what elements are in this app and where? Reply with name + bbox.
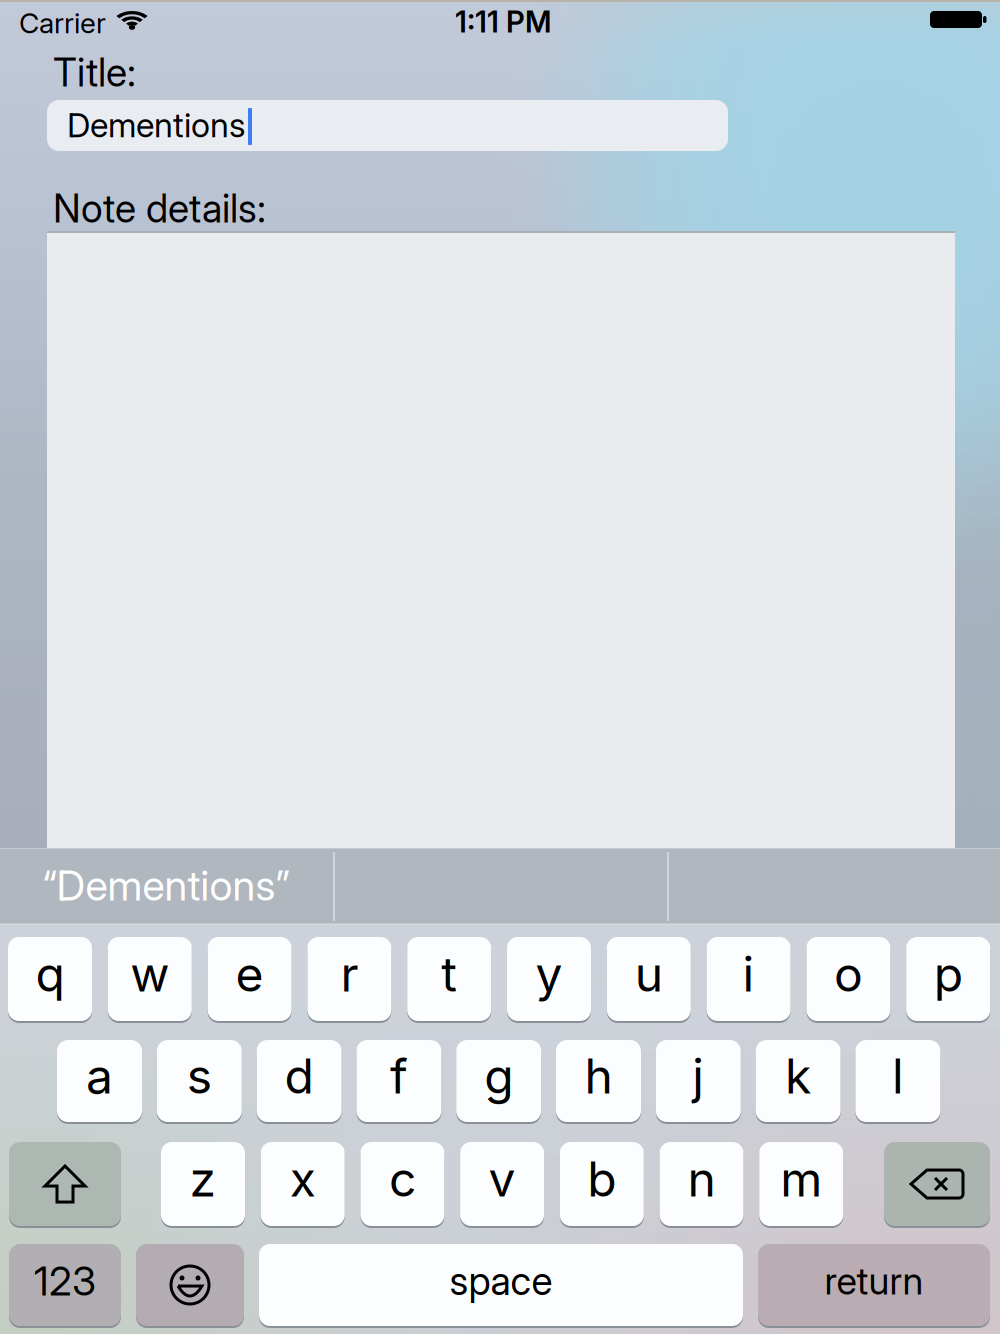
staticText: Carrier <box>19 6 106 40</box>
staticText: w <box>130 945 169 1003</box>
button[interactable]: o <box>806 936 890 1022</box>
staticText: s <box>187 1047 212 1105</box>
button[interactable]: p <box>906 936 990 1022</box>
staticText: a <box>86 1047 113 1105</box>
staticText: space <box>449 1258 552 1304</box>
button[interactable]: space <box>259 1243 743 1327</box>
button[interactable]: q <box>8 936 92 1022</box>
button[interactable]: r <box>307 936 391 1022</box>
staticText: g <box>484 1047 513 1105</box>
staticText: f <box>390 1047 408 1105</box>
staticText: h <box>584 1047 612 1105</box>
button[interactable]: 123 <box>9 1243 121 1327</box>
staticText: d <box>285 1047 314 1105</box>
staticText: k <box>785 1047 811 1105</box>
button[interactable]: Note details <box>47 231 955 848</box>
staticText: o <box>834 945 863 1003</box>
staticText: c <box>389 1150 416 1208</box>
button[interactable]: “Dementions” <box>0 848 332 925</box>
staticText: return <box>824 1258 923 1304</box>
staticText: e <box>236 945 264 1003</box>
button[interactable]: Delete <box>884 1141 990 1227</box>
button[interactable]: Shift <box>9 1141 121 1227</box>
staticText: “Dementions” <box>42 860 289 910</box>
button[interactable]: z <box>161 1141 245 1227</box>
button[interactable]: Title <box>47 100 728 151</box>
staticText: b <box>587 1150 616 1208</box>
staticText: z <box>189 1150 216 1208</box>
staticText: y <box>535 945 562 1003</box>
button[interactable]: d <box>257 1039 342 1123</box>
staticText: p <box>934 945 963 1003</box>
staticText: j <box>692 1047 704 1105</box>
staticText: m <box>780 1150 822 1208</box>
button[interactable]: a <box>57 1039 142 1123</box>
staticText: Dementions <box>67 105 246 145</box>
staticText: t <box>441 945 457 1003</box>
button[interactable]: t <box>407 936 491 1022</box>
staticText: q <box>35 945 64 1003</box>
button[interactable]: i <box>707 936 791 1022</box>
button[interactable]: u <box>607 936 691 1022</box>
staticText: x <box>290 1150 316 1208</box>
button[interactable]: s <box>157 1039 242 1123</box>
staticText: Note details: <box>53 185 266 232</box>
staticText: l <box>892 1047 904 1105</box>
button[interactable]: l <box>855 1039 940 1123</box>
staticText: n <box>687 1150 715 1208</box>
button[interactable]: h <box>556 1039 641 1123</box>
button[interactable]: n <box>659 1141 743 1227</box>
button[interactable]: return <box>758 1243 990 1327</box>
button[interactable]: Emoji <box>136 1243 244 1327</box>
button[interactable]: w <box>108 936 192 1022</box>
staticText: 1:11 PM <box>455 4 552 39</box>
staticText: v <box>489 1150 516 1208</box>
staticText: u <box>635 945 663 1003</box>
staticText: 123 <box>34 1257 96 1305</box>
button[interactable]: j <box>656 1039 741 1123</box>
button[interactable]: g <box>456 1039 541 1123</box>
button[interactable]: f <box>356 1039 441 1123</box>
button[interactable]: e <box>208 936 292 1022</box>
button[interactable]: v <box>460 1141 544 1227</box>
staticText: i <box>743 945 755 1003</box>
button[interactable]: b <box>560 1141 644 1227</box>
staticText: r <box>340 945 358 1003</box>
button[interactable]: c <box>360 1141 444 1227</box>
button[interactable]: k <box>756 1039 841 1123</box>
button[interactable]: m <box>759 1141 843 1227</box>
button[interactable]: x <box>261 1141 345 1227</box>
staticText: Title: <box>53 49 136 96</box>
button[interactable]: y <box>507 936 591 1022</box>
